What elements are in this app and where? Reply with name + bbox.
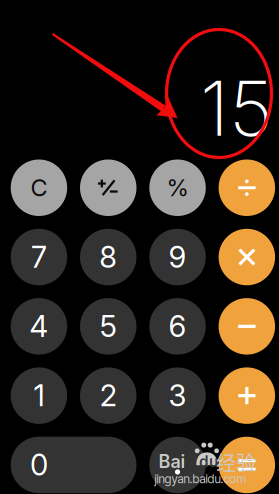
staticText: 6 xyxy=(168,309,186,344)
staticText: 0 xyxy=(30,447,48,483)
button[interactable]: % xyxy=(149,159,206,216)
button[interactable]: 5 xyxy=(80,298,136,355)
staticText: 15 xyxy=(200,62,273,154)
staticText: Bai xyxy=(158,450,185,472)
button[interactable]: Multiply xyxy=(219,229,275,285)
button[interactable]: 2 xyxy=(80,367,136,424)
button[interactable]: Toggle sign xyxy=(80,159,136,216)
button[interactable]: 3 xyxy=(149,367,206,424)
button[interactable]: Minus xyxy=(219,298,275,355)
button[interactable]: 7 xyxy=(11,229,67,285)
staticText: 2 xyxy=(100,378,117,413)
button[interactable]: 0 xyxy=(11,437,136,493)
button[interactable]: Plus xyxy=(219,367,275,424)
staticText: 经验 xyxy=(216,447,256,476)
button[interactable]: 6 xyxy=(149,298,206,355)
staticText: 4 xyxy=(29,309,48,344)
staticText: 5 xyxy=(100,309,117,344)
button[interactable]: 8 xyxy=(80,229,136,285)
button[interactable]: 1 xyxy=(11,367,67,424)
button[interactable]: C xyxy=(11,159,67,216)
staticText: jingyan.baidu.com xyxy=(154,471,246,486)
button[interactable]: Equals xyxy=(219,437,275,493)
button[interactable]: Decimal point xyxy=(149,437,206,493)
staticText: 7 xyxy=(31,239,47,275)
staticText: C xyxy=(30,174,47,202)
button[interactable]: Divide xyxy=(219,159,275,216)
staticText: 9 xyxy=(168,239,186,275)
staticText: 1 xyxy=(33,378,44,413)
staticText: % xyxy=(166,174,188,202)
staticText: 3 xyxy=(168,378,186,413)
staticText: du xyxy=(199,452,218,471)
button[interactable]: 4 xyxy=(11,298,67,355)
staticText: 8 xyxy=(99,239,117,275)
button[interactable]: 9 xyxy=(149,229,206,285)
